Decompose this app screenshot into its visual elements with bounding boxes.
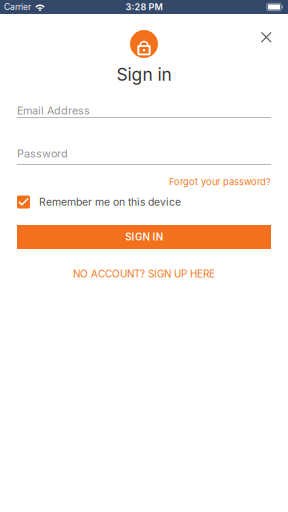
staticText: Sign in	[116, 64, 171, 85]
button[interactable]: SIGN IN	[17, 225, 271, 249]
button[interactable]: Password	[17, 147, 271, 165]
button[interactable]: Close	[252, 23, 280, 51]
button[interactable]: NO ACCOUNT? SIGN UP HERE	[17, 268, 271, 280]
staticText: Email Address	[17, 104, 90, 117]
button[interactable]: Forgot your password?	[17, 176, 271, 188]
staticText: NO ACCOUNT? SIGN UP HERE	[73, 268, 215, 280]
staticText: SIGN IN	[125, 231, 163, 243]
staticText: Password	[17, 147, 68, 160]
staticText: 3:28 PM	[125, 1, 162, 12]
staticText: Carrier	[4, 2, 31, 12]
staticText: Forgot your password?	[169, 176, 271, 188]
button[interactable]: Remember me on this device	[17, 195, 271, 209]
button[interactable]: Email Address	[17, 104, 271, 118]
staticText: Remember me on this device	[39, 196, 181, 208]
